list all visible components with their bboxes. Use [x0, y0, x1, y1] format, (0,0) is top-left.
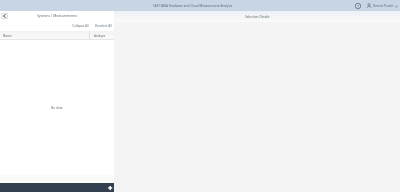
staticText: Selection Details: [245, 15, 270, 19]
staticText: SAP HANA Hardware and Cloud Measurement …: [153, 4, 233, 8]
staticText: Systems / Measurements: [37, 13, 78, 18]
button[interactable]: Collapse All: [72, 24, 89, 28]
button[interactable]: User account: [365, 2, 373, 10]
staticText: No data: [51, 106, 63, 110]
staticText: Name: [3, 34, 12, 38]
staticText: Dennis Punde: [373, 4, 394, 8]
button[interactable]: Add: [106, 184, 113, 191]
button[interactable]: Back: [1, 13, 8, 19]
staticText: Analyze: [94, 34, 106, 38]
button[interactable]: Deselect All: [95, 24, 112, 28]
button[interactable]: Help: [354, 2, 362, 10]
